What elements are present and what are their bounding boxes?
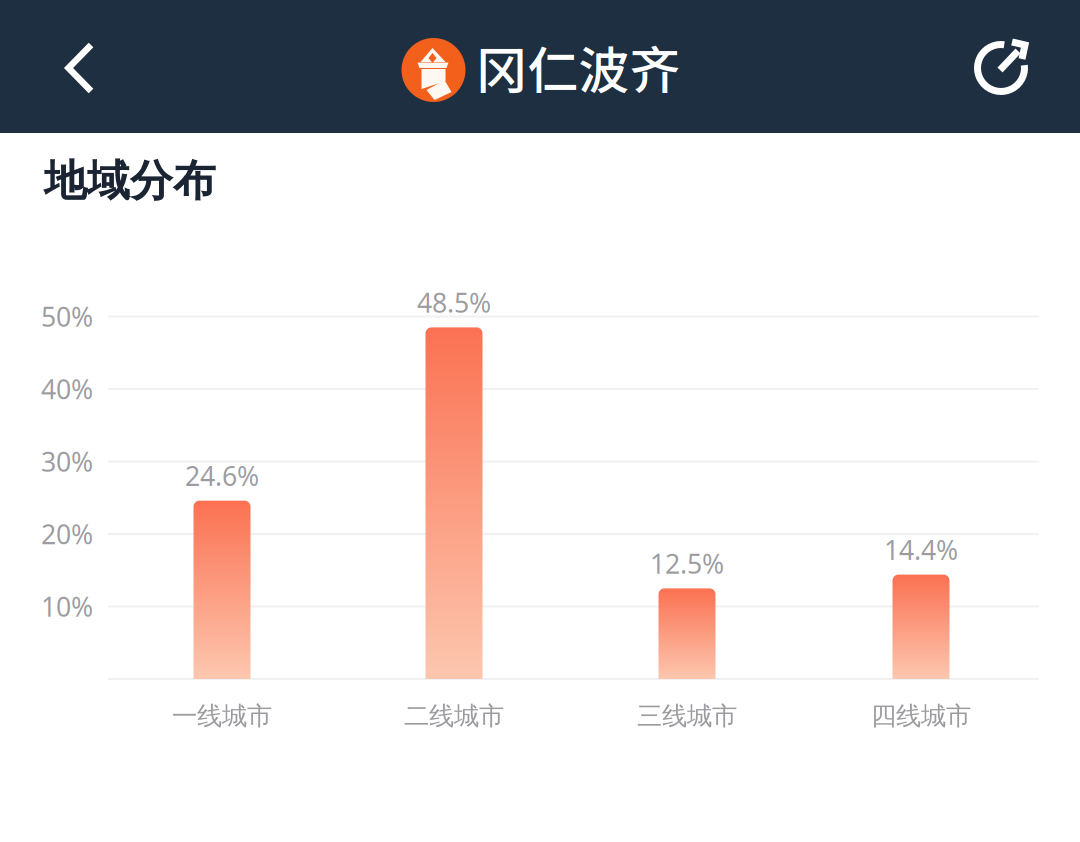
staticText: 48.5%	[417, 285, 491, 320]
staticText: 10%	[41, 589, 93, 624]
staticText: 二线城市	[404, 700, 504, 731]
staticText: 50%	[41, 299, 93, 334]
staticText: 12.5%	[650, 546, 724, 581]
button[interactable]: Share	[956, 23, 1046, 113]
staticText: 14.4%	[884, 532, 958, 567]
staticText: 地域分布	[44, 155, 216, 207]
staticText: 20%	[41, 516, 93, 552]
staticText: 三线城市	[637, 700, 737, 731]
staticText: 40%	[41, 371, 93, 407]
staticText: 30%	[41, 444, 93, 479]
staticText: 24.6%	[185, 458, 259, 493]
button[interactable]: Back	[60, 23, 150, 113]
staticText: 四线城市	[871, 700, 971, 731]
staticText: 一线城市	[172, 700, 272, 731]
staticText: 冈仁波齐	[476, 30, 680, 104]
